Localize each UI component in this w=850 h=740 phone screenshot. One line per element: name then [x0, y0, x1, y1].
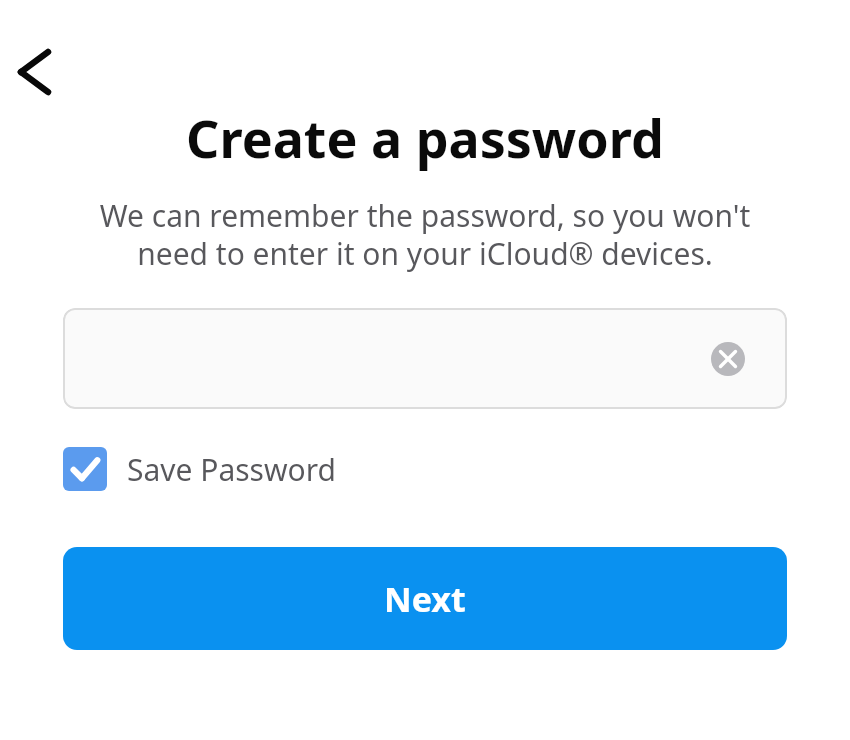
button[interactable]: Clear text	[711, 342, 745, 376]
staticText: Next	[384, 576, 466, 622]
button[interactable]: Clear text	[63, 308, 787, 409]
staticText: We can remember the password, so you won…	[40, 195, 810, 274]
staticText: Save Password	[127, 449, 336, 490]
staticText: Create a password	[0, 102, 850, 173]
button[interactable]: Save Password	[63, 447, 336, 491]
button[interactable]: Next	[63, 547, 787, 650]
button[interactable]: Back	[4, 42, 64, 102]
